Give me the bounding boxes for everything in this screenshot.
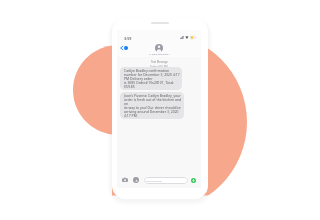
staticText: +1 (888) 888-8888 › [148, 52, 170, 55]
button[interactable]: Text Message [144, 177, 188, 184]
button[interactable]: Caitlyn Bradley confirmation number for … [120, 67, 182, 90]
button[interactable]: Camera [122, 177, 128, 183]
button[interactable]: Contact [155, 44, 163, 52]
staticText: Text Message [146, 179, 162, 182]
staticText: Text Message [151, 60, 168, 64]
staticText: 3:59 [124, 36, 132, 41]
staticText: Caitlyn Bradley confirmation number for … [124, 68, 180, 89]
staticText: Joan's Pizzeria: Caitlyn Bradley, your o… [124, 93, 182, 118]
staticText: Today 4:16 PM [150, 65, 168, 69]
button[interactable]: Send [191, 178, 196, 183]
button[interactable]: Joan's Pizzeria: Caitlyn Bradley, your o… [120, 92, 184, 119]
button[interactable]: App Store [133, 177, 139, 183]
button[interactable]: Back [120, 45, 128, 50]
